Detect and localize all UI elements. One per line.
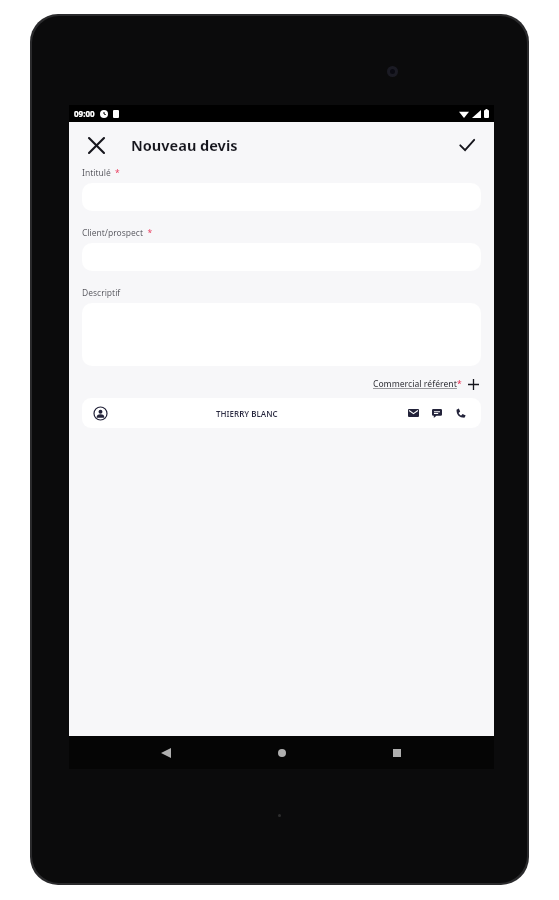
button[interactable]: Retour bbox=[148, 736, 184, 769]
staticText: Nouveau devis bbox=[131, 135, 238, 155]
button[interactable]: Valider bbox=[448, 126, 486, 164]
button[interactable]: Accueil bbox=[264, 736, 300, 769]
button[interactable]: Fermer bbox=[77, 126, 115, 164]
staticText: Commercial référent* bbox=[373, 378, 462, 390]
button[interactable]: Envoyer un SMS bbox=[427, 403, 447, 423]
staticText: Client/prospect * bbox=[82, 227, 153, 239]
staticText: 09:00 bbox=[74, 108, 95, 119]
staticText: Descriptif bbox=[82, 287, 121, 299]
button[interactable]: Envoyer un email bbox=[403, 403, 423, 423]
staticText: THIERRY BLANC bbox=[216, 408, 278, 419]
button[interactable]: Commercial référent* bbox=[371, 376, 481, 392]
button[interactable]: THIERRY BLANC bbox=[82, 398, 481, 428]
button[interactable]: Applications récentes bbox=[379, 736, 415, 769]
button[interactable]: Appeler bbox=[451, 403, 471, 423]
staticText: Intitulé * bbox=[82, 167, 120, 179]
